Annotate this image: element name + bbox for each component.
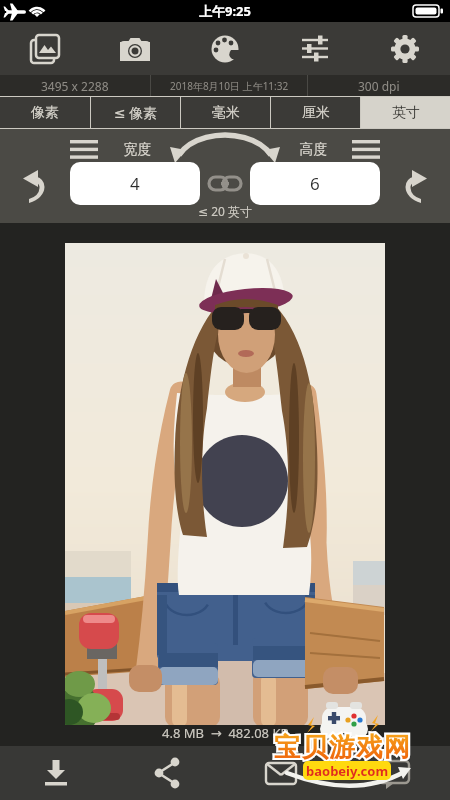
staticText: 宝贝游戏网 bbox=[274, 731, 412, 764]
button[interactable] bbox=[112, 746, 224, 800]
button[interactable] bbox=[70, 140, 98, 159]
button[interactable] bbox=[360, 22, 450, 75]
button[interactable]: baobeiy.com bbox=[303, 761, 391, 780]
staticText: 4 bbox=[130, 172, 140, 195]
staticText: 3495 x 2288 bbox=[41, 78, 109, 94]
button[interactable] bbox=[270, 22, 360, 75]
button[interactable] bbox=[224, 746, 337, 800]
button[interactable]: 像素 bbox=[0, 97, 90, 128]
staticText: 6 bbox=[310, 172, 320, 195]
staticText: 高度 bbox=[286, 141, 341, 159]
staticText: 厘米 bbox=[302, 104, 330, 122]
button[interactable] bbox=[399, 166, 431, 204]
staticText: 英寸 bbox=[392, 104, 420, 122]
button[interactable]: ≤ 像素 bbox=[91, 97, 180, 128]
staticText: 300 dpi bbox=[358, 78, 400, 94]
button[interactable] bbox=[337, 746, 450, 800]
staticText: 宝贝游戏网 bbox=[274, 731, 412, 764]
staticText: ≤ 像素 bbox=[114, 103, 158, 122]
button[interactable] bbox=[165, 131, 285, 171]
staticText: 4.8 MB → 482.08 KB bbox=[162, 724, 289, 742]
staticText: 毫米 bbox=[212, 104, 240, 122]
staticText: 2018年8月10日 上午11:32 bbox=[170, 79, 289, 93]
button[interactable]: 6 bbox=[250, 162, 380, 205]
button[interactable]: 英寸 bbox=[361, 97, 450, 128]
button[interactable] bbox=[209, 174, 241, 194]
staticText: ≤ 20 英寸 bbox=[0, 203, 450, 219]
staticText: 宽度 bbox=[110, 141, 165, 159]
button[interactable]: 厘米 bbox=[271, 97, 360, 128]
button[interactable] bbox=[19, 166, 51, 204]
staticText: baobeiy.com bbox=[306, 762, 389, 780]
button[interactable]: 毫米 bbox=[181, 97, 270, 128]
button[interactable] bbox=[180, 22, 270, 75]
staticText: 像素 bbox=[31, 104, 59, 122]
button[interactable] bbox=[0, 22, 90, 75]
button[interactable] bbox=[0, 746, 112, 800]
button[interactable] bbox=[90, 22, 180, 75]
staticText: 上午9:25 bbox=[199, 2, 251, 20]
button[interactable] bbox=[352, 140, 380, 159]
button[interactable]: 4 bbox=[70, 162, 200, 205]
